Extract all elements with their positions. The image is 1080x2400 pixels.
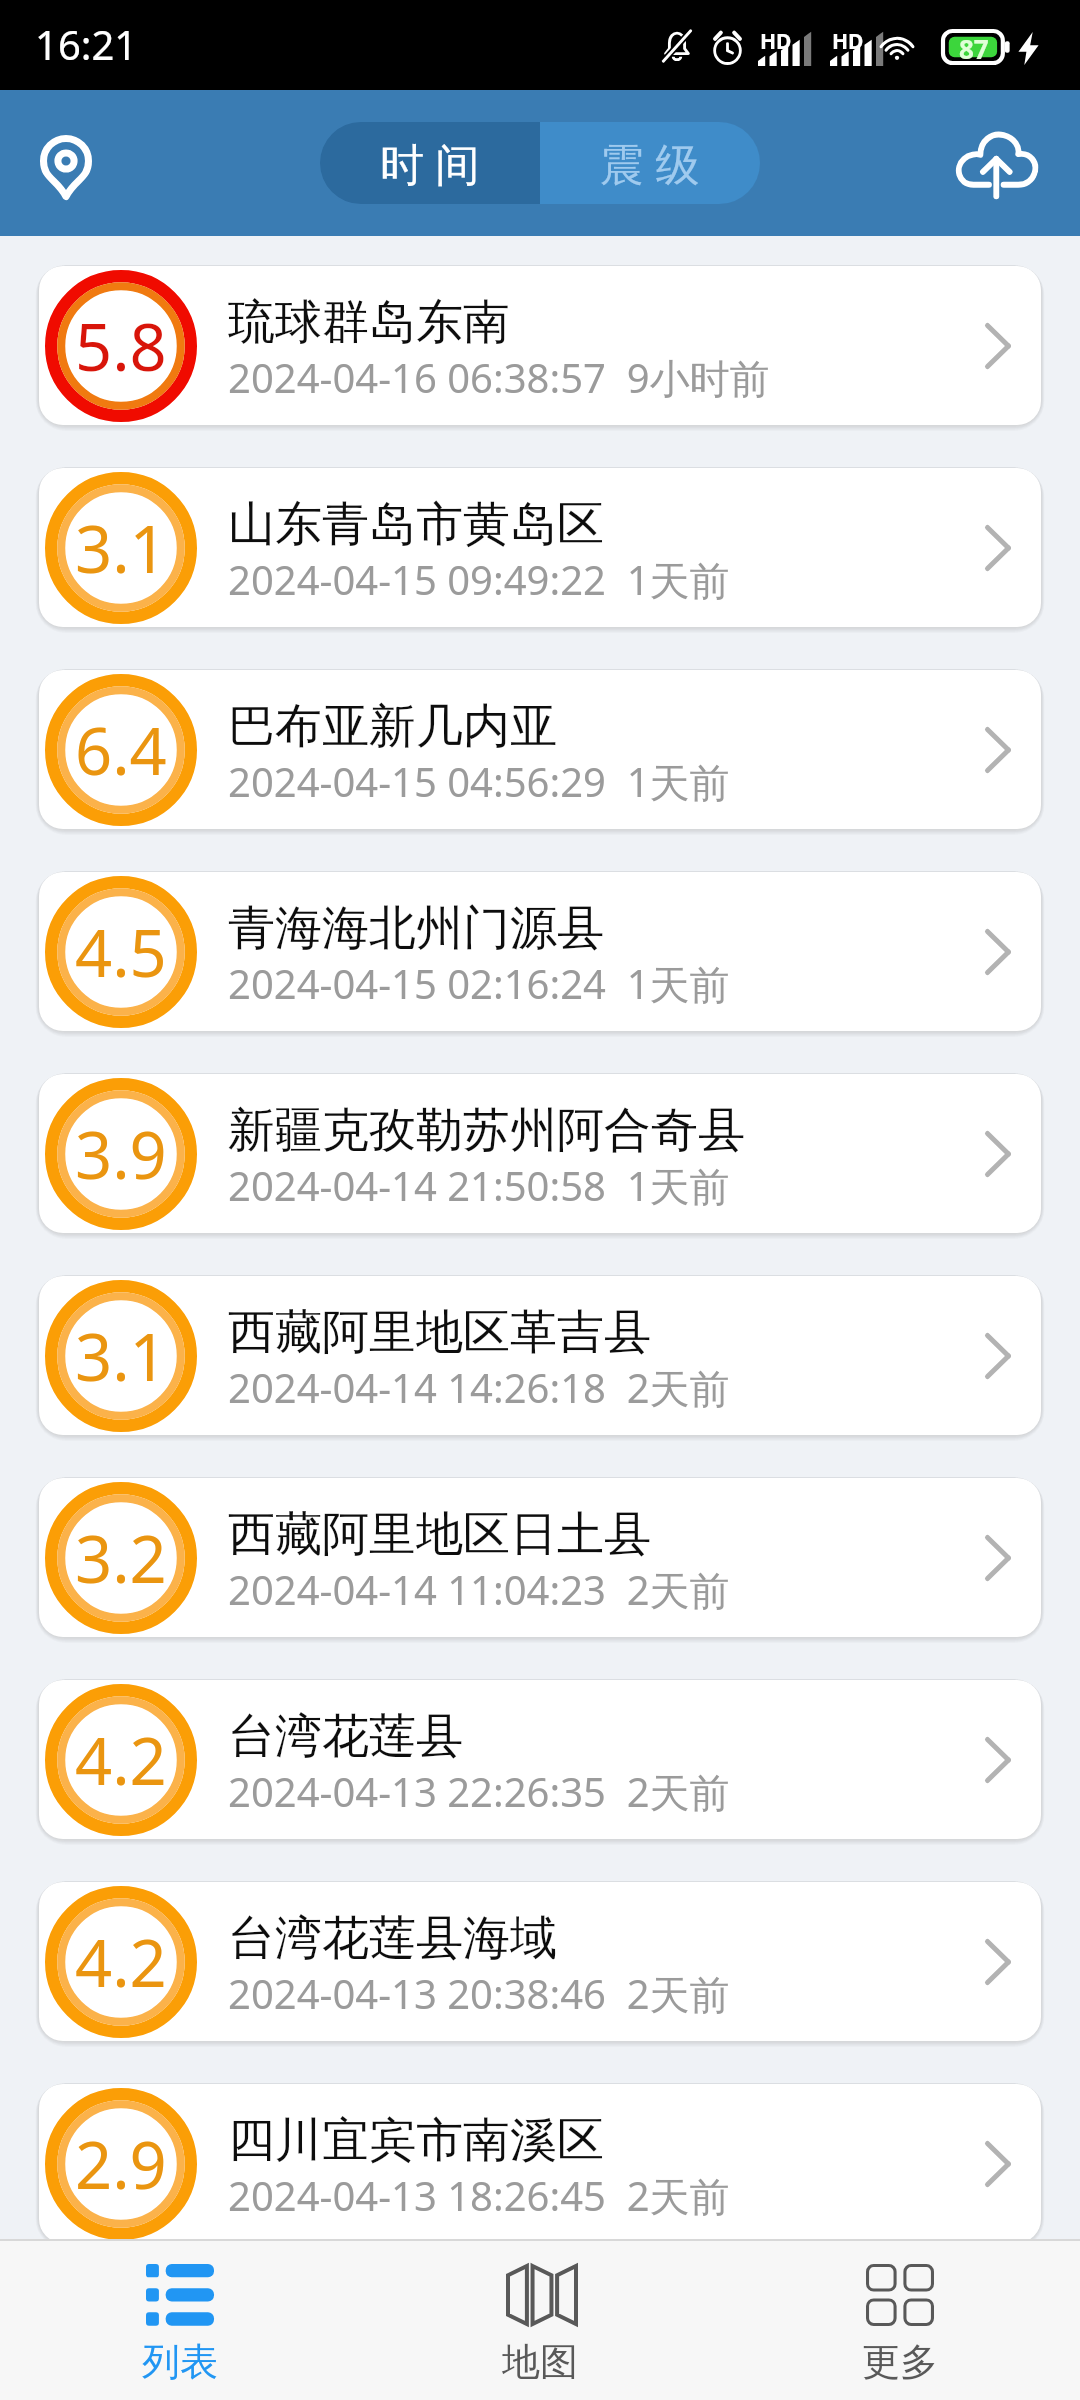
- staticText: HD: [760, 27, 792, 56]
- button[interactable]: 地图: [360, 2241, 720, 2400]
- staticText: 台湾花莲县: [228, 1707, 463, 1766]
- staticText: 2.9: [75, 2120, 167, 2209]
- button[interactable]: 4.2: [39, 1882, 1041, 2041]
- staticText: 16:21: [35, 17, 138, 71]
- staticText: 87: [959, 31, 989, 63]
- staticText: 青海海北州门源县: [228, 899, 604, 958]
- staticText: 3.1: [75, 1312, 167, 1401]
- staticText: 四川宜宾市南溪区: [228, 2111, 604, 2170]
- staticText: 台湾花莲县海域: [228, 1909, 557, 1968]
- staticText: 列表: [142, 2338, 218, 2386]
- staticText: 震 级: [600, 133, 700, 193]
- staticText: 2024-04-13 18:26:45 2天前: [228, 2168, 730, 2223]
- button[interactable]: Location: [22, 119, 110, 207]
- staticText: 4.2: [75, 1716, 167, 1805]
- staticText: 山东青岛市黄岛区: [228, 495, 604, 554]
- staticText: 3.1: [75, 504, 167, 593]
- button[interactable]: 6.4: [39, 670, 1041, 829]
- staticText: 2024-04-16 06:38:57 9小时前: [228, 350, 770, 405]
- button[interactable]: 3.2: [39, 1478, 1041, 1637]
- button[interactable]: 更多: [720, 2241, 1080, 2400]
- staticText: 2024-04-13 22:26:35 2天前: [228, 1764, 730, 1819]
- button[interactable]: Upload: [951, 119, 1039, 207]
- button[interactable]: 3.9: [39, 1074, 1041, 1233]
- button[interactable]: 列表: [0, 2241, 360, 2400]
- staticText: 2024-04-13 20:38:46 2天前: [228, 1966, 730, 2021]
- button[interactable]: 2.9: [39, 2084, 1041, 2243]
- staticText: 西藏阿里地区日土县: [228, 1505, 651, 1564]
- staticText: 琉球群岛东南: [228, 293, 510, 352]
- staticText: 2024-04-15 02:16:24 1天前: [228, 956, 730, 1011]
- staticText: 2024-04-15 09:49:22 1天前: [228, 552, 730, 607]
- staticText: 6.4: [75, 706, 167, 795]
- staticText: 地图: [502, 2338, 578, 2386]
- staticText: 西藏阿里地区革吉县: [228, 1303, 651, 1362]
- staticText: 3.2: [75, 1514, 167, 1603]
- staticText: 新疆克孜勒苏州阿合奇县: [228, 1101, 745, 1160]
- staticText: 巴布亚新几内亚: [228, 697, 557, 756]
- staticText: 2024-04-14 11:04:23 2天前: [228, 1562, 730, 1617]
- button[interactable]: 3.1: [39, 1276, 1041, 1435]
- staticText: 5.8: [75, 302, 167, 391]
- staticText: 4.2: [75, 1918, 167, 2007]
- button[interactable]: 3.1: [39, 468, 1041, 627]
- staticText: 4.5: [75, 908, 167, 997]
- button[interactable]: 时 间: [320, 122, 540, 204]
- button[interactable]: 震 级: [540, 122, 760, 204]
- button[interactable]: 4.5: [39, 872, 1041, 1031]
- staticText: 2024-04-15 04:56:29 1天前: [228, 754, 730, 809]
- staticText: 更多: [862, 2338, 938, 2386]
- staticText: 2024-04-14 21:50:58 1天前: [228, 1158, 730, 1213]
- staticText: 3.9: [75, 1110, 167, 1199]
- staticText: 时 间: [380, 133, 480, 193]
- staticText: HD: [832, 27, 864, 56]
- button[interactable]: 5.8: [39, 266, 1041, 425]
- button[interactable]: 4.2: [39, 1680, 1041, 1839]
- staticText: 2024-04-14 14:26:18 2天前: [228, 1360, 730, 1415]
